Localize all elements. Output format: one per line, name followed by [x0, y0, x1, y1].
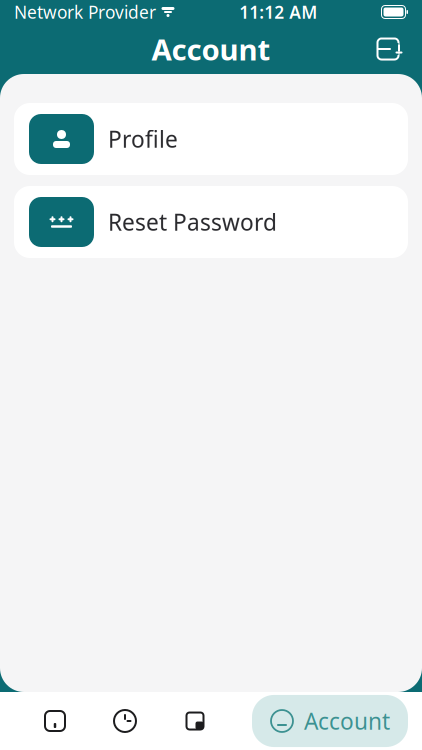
button[interactable]: Profile	[14, 103, 408, 175]
staticText: 11:12 AM	[239, 0, 317, 23]
staticText: Account	[151, 29, 270, 68]
staticText: Profile	[108, 124, 178, 154]
button[interactable]: Home	[20, 696, 90, 746]
staticText: Account	[304, 706, 390, 736]
button[interactable]: Log out	[366, 27, 410, 71]
button[interactable]: History	[90, 696, 160, 746]
button[interactable]: Reset Password	[14, 186, 408, 258]
staticText: Network Provider	[14, 0, 156, 23]
staticText: Reset Password	[108, 207, 277, 237]
button[interactable]: Account	[252, 695, 408, 747]
button[interactable]: Send	[160, 696, 230, 746]
